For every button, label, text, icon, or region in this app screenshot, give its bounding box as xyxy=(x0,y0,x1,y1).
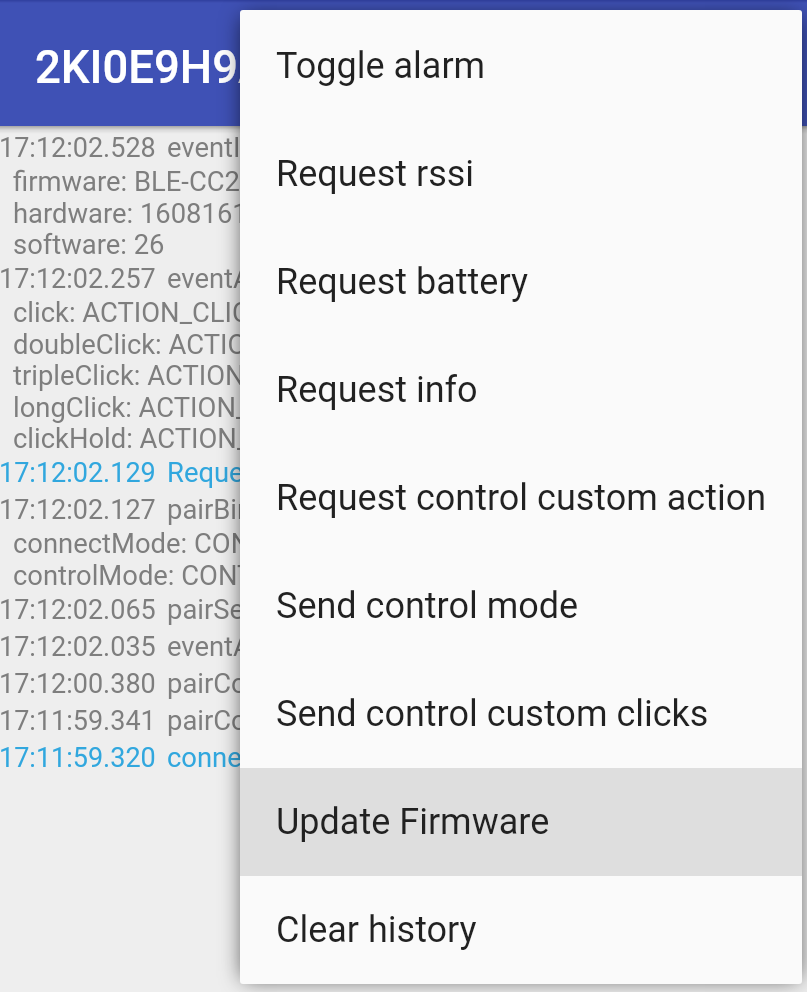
staticText: hardware: 16081611 xyxy=(13,198,264,229)
staticText: 17:11:59.320 xyxy=(0,742,156,774)
staticText: 17:12:02.129 xyxy=(0,457,156,489)
staticText: eventAck xyxy=(167,631,280,663)
staticText: longClick: ACTION_LONG_CLICK xyxy=(13,392,407,423)
staticText: doubleClick: ACTION_DOUBLE_CLICK xyxy=(13,329,468,360)
button[interactable]: Update Firmware xyxy=(240,768,802,876)
staticText: Send control mode xyxy=(276,585,579,627)
staticText: connectMode: CONNECT_MODE_SIMPLE xyxy=(13,528,516,559)
staticText: pairBindResult xyxy=(167,494,344,526)
staticText: click: ACTION_CLICK xyxy=(13,297,268,328)
staticText: pairConfirmed xyxy=(167,705,341,737)
staticText: 17:12:02.035 xyxy=(0,631,156,663)
staticText: clickHold: ACTION_CLICK_HOLD xyxy=(13,423,408,454)
button[interactable]: Send control custom clicks xyxy=(240,660,802,768)
button[interactable]: Toggle alarm xyxy=(240,12,802,120)
button[interactable]: Request info xyxy=(240,336,802,444)
staticText: 2KI0E9H9AB xyxy=(35,41,298,94)
staticText: eventInfo xyxy=(167,132,281,164)
staticText: 17:12:00.380 xyxy=(0,668,156,700)
staticText: connected xyxy=(167,742,296,774)
staticText: RequestInfo xyxy=(167,457,315,489)
staticText: 17:12:02.065 xyxy=(0,594,156,626)
button[interactable]: Request battery xyxy=(240,228,802,336)
staticText: 17:12:02.528 xyxy=(0,132,156,164)
button[interactable]: Send control mode xyxy=(240,552,802,660)
staticText: Request info xyxy=(276,369,478,411)
button[interactable]: Device 2KI0E9H9AB toolbar xyxy=(0,0,807,126)
staticText: 17:11:59.341 xyxy=(0,705,156,737)
staticText: tripleClick: ACTION_TRIPLE_CLICK xyxy=(13,360,433,391)
staticText: 17:12:02.257 xyxy=(0,263,156,295)
staticText: 17:12:02.127 xyxy=(0,494,156,526)
staticText: controlMode: CONTROL_MODE_SIMPLE xyxy=(13,560,501,591)
staticText: Request battery xyxy=(276,261,528,303)
staticText: eventActions xyxy=(167,263,326,295)
button[interactable]: Request control custom action xyxy=(240,444,802,552)
staticText: Request control custom action xyxy=(276,477,767,519)
staticText: firmware: BLE-CC2640-1.3.2 xyxy=(13,166,355,197)
staticText: Toggle alarm xyxy=(276,45,486,87)
staticText: Request rssi xyxy=(276,153,475,195)
staticText: pairConfirmed xyxy=(167,668,341,700)
button[interactable]: Request rssi xyxy=(240,120,802,228)
staticText: Update Firmware xyxy=(276,801,550,843)
staticText: Clear history xyxy=(276,909,477,951)
button[interactable]: Clear history xyxy=(240,876,802,984)
staticText: Send control custom clicks xyxy=(276,693,709,735)
staticText: software: 26 xyxy=(13,229,165,260)
staticText: pairSendUserData xyxy=(167,594,388,626)
